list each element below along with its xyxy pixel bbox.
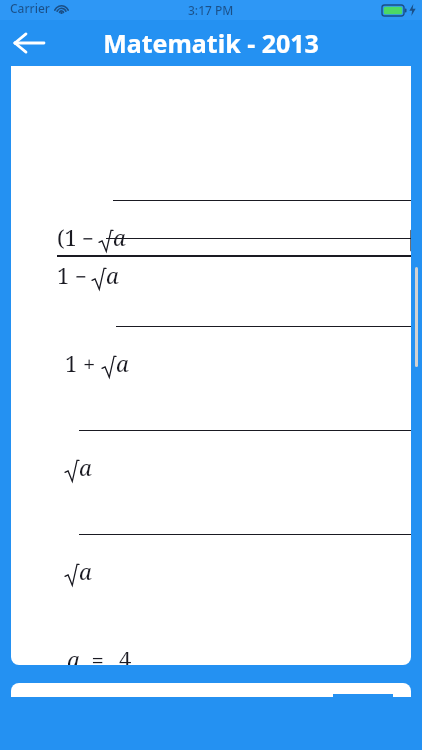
staticText: a bbox=[116, 348, 129, 378]
staticText: (1 bbox=[57, 222, 77, 252]
staticText: 1 + bbox=[65, 348, 102, 378]
staticText: a bbox=[79, 556, 92, 586]
staticText: 4 bbox=[119, 644, 132, 665]
staticText: − bbox=[70, 263, 92, 290]
staticText: 3:17 PM bbox=[188, 2, 234, 18]
staticText: Carrier bbox=[10, 0, 50, 16]
staticText: − bbox=[77, 225, 99, 252]
staticText: a bbox=[67, 644, 80, 665]
staticText: 1 bbox=[57, 260, 70, 290]
staticText: a bbox=[113, 222, 126, 252]
button[interactable]: Back bbox=[6, 20, 52, 66]
staticText: a bbox=[106, 260, 119, 290]
button[interactable] bbox=[11, 683, 411, 697]
button[interactable]: (1 bbox=[11, 66, 411, 665]
staticText: = bbox=[80, 644, 116, 665]
staticText: Matematik - 2013 bbox=[103, 26, 319, 60]
staticText: a bbox=[79, 452, 92, 482]
